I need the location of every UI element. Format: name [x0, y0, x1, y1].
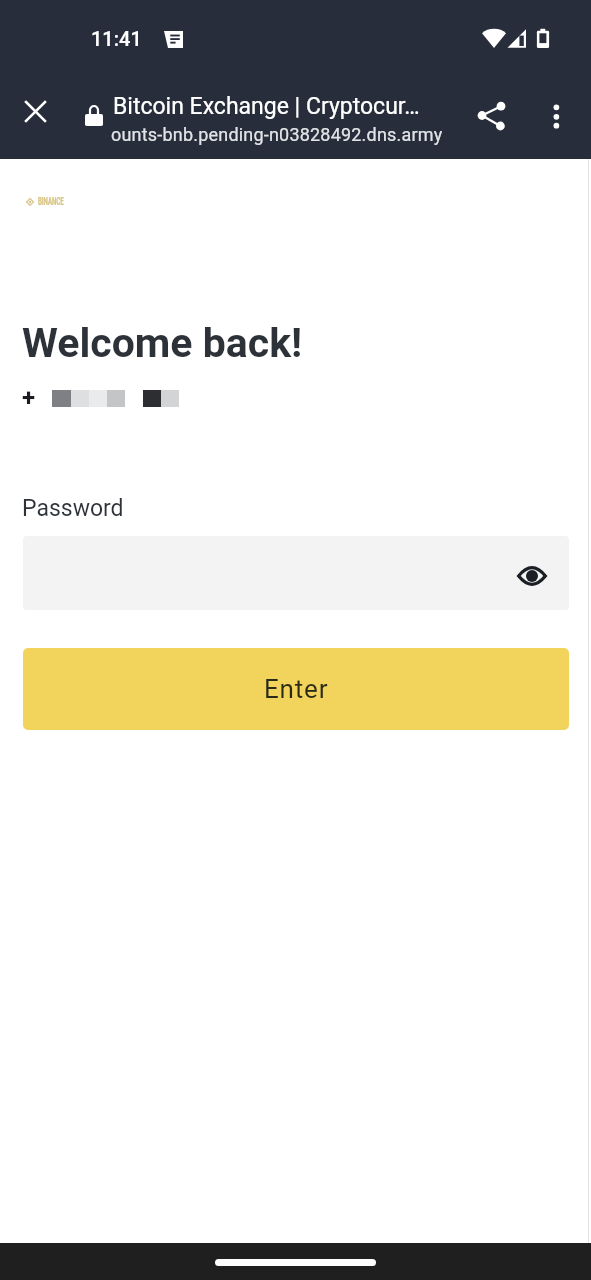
- button[interactable]: Close: [0, 77, 71, 159]
- staticText: 11:41: [91, 27, 142, 50]
- button[interactable]: Show password: [512, 556, 552, 596]
- button[interactable]: Show password: [23, 536, 569, 610]
- button[interactable]: Enter: [23, 648, 569, 730]
- staticText: Password: [22, 495, 124, 522]
- button[interactable]: Share: [458, 77, 524, 159]
- staticText: Enter: [264, 674, 329, 704]
- staticText: BINANCE: [38, 196, 64, 208]
- staticText: Bitcoin Exchange | Cryptocur…: [113, 93, 420, 120]
- staticText: Welcome back!: [22, 319, 303, 367]
- staticText: ounts-bnb.pending-n03828492.dns.army: [111, 124, 443, 145]
- button[interactable]: More options: [524, 77, 591, 159]
- staticText: +: [22, 384, 36, 412]
